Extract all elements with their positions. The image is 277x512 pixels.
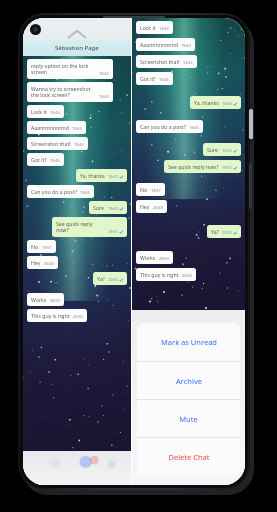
staticText: Screenshot that! bbox=[31, 140, 71, 147]
button[interactable]: Aaannnnnnnnd bbox=[27, 121, 86, 134]
staticText: 19:45 bbox=[108, 206, 118, 211]
staticText: Sure bbox=[207, 146, 219, 153]
staticText: 19:43 bbox=[181, 43, 191, 48]
staticText: Hey bbox=[31, 259, 41, 266]
staticText: This guy is right bbox=[31, 312, 70, 319]
staticText: Got it? bbox=[31, 156, 47, 163]
button[interactable]: Ya, thanks bbox=[76, 169, 127, 182]
staticText: 19:45 bbox=[50, 158, 60, 163]
staticText: 19:57 bbox=[108, 229, 118, 234]
staticText: Mark as Unread bbox=[161, 337, 217, 347]
button[interactable]: Got it? bbox=[136, 72, 173, 85]
button[interactable]: See quick reply now? bbox=[52, 217, 127, 237]
staticText: Lock it bbox=[140, 24, 156, 31]
button[interactable]: Sure bbox=[89, 201, 127, 214]
staticText: 19:43 bbox=[99, 71, 109, 76]
staticText: 19:57 bbox=[42, 245, 52, 250]
button[interactable]: Archive bbox=[137, 362, 240, 399]
staticText: 20:50 bbox=[159, 256, 169, 261]
staticText: Got it? bbox=[140, 75, 156, 82]
staticText: 19:43 bbox=[74, 142, 84, 147]
staticText: 19:57 bbox=[222, 165, 232, 170]
button[interactable]: Screenshot that! bbox=[27, 137, 88, 150]
staticText: No bbox=[140, 186, 148, 193]
staticText: 20:50 bbox=[73, 314, 83, 319]
button[interactable]: No bbox=[27, 240, 56, 253]
staticText: Ya? bbox=[211, 228, 219, 235]
staticText: 20:50 bbox=[108, 277, 118, 282]
button[interactable]: Hey bbox=[136, 200, 167, 213]
staticText: Ya? bbox=[97, 275, 105, 282]
staticText: 19:57 bbox=[151, 188, 161, 193]
staticText: 20:50 bbox=[50, 298, 60, 303]
button[interactable]: Wanna try to screenshot the lock screen? bbox=[27, 82, 113, 102]
staticText: 20:49 bbox=[44, 261, 54, 266]
staticText: Mute bbox=[179, 414, 198, 424]
button[interactable]: Mark as Unread bbox=[137, 323, 240, 361]
staticText: 19:43 bbox=[72, 126, 82, 131]
staticText: Lock it bbox=[31, 108, 47, 115]
staticText: Delete Chat bbox=[168, 452, 210, 462]
staticText: 19:45 bbox=[108, 174, 118, 179]
staticText: Works bbox=[31, 296, 47, 303]
button[interactable]: Ya? bbox=[93, 272, 127, 285]
staticText: 20:49 bbox=[153, 205, 163, 210]
button[interactable]: Mute bbox=[137, 400, 240, 437]
staticText: reply option on the lock screen bbox=[31, 62, 96, 76]
button[interactable]: Delete Chat bbox=[137, 438, 240, 475]
staticText: 19:45 bbox=[222, 101, 232, 106]
staticText: See quick reply now? bbox=[56, 220, 105, 234]
button[interactable]: Ya, thanks bbox=[190, 96, 241, 109]
button[interactable]: Sébastien Page bbox=[23, 40, 131, 56]
staticText: Works bbox=[140, 254, 156, 261]
staticText: Can you do a post? bbox=[31, 188, 77, 195]
staticText: Sébastien Page bbox=[55, 44, 99, 52]
staticText: Archive bbox=[176, 376, 202, 386]
staticText: 19:43 bbox=[159, 26, 169, 31]
staticText: Sure bbox=[93, 204, 105, 211]
staticText: 19:45 bbox=[159, 77, 169, 82]
button[interactable]: This guy is right bbox=[136, 268, 196, 281]
staticText: 19:45 bbox=[222, 148, 232, 153]
staticText: Ya, thanks bbox=[80, 172, 105, 179]
staticText: See quick reply now? bbox=[168, 163, 219, 170]
button[interactable]: Can you do a post? bbox=[136, 120, 203, 133]
staticText: 19:43 bbox=[183, 60, 193, 65]
button[interactable]: Can you do a post? bbox=[27, 185, 94, 198]
staticText: Aaannnnnnnnd bbox=[31, 124, 69, 131]
staticText: 19:45 bbox=[80, 190, 90, 195]
staticText: Hey bbox=[140, 203, 150, 210]
staticText: Can you do a post? bbox=[140, 123, 186, 130]
button[interactable]: Lock it bbox=[136, 21, 173, 34]
button[interactable]: This guy is right bbox=[27, 309, 87, 322]
staticText: 20:50 bbox=[182, 273, 192, 278]
button[interactable]: Works bbox=[136, 251, 173, 264]
button[interactable]: reply option on the lock screen bbox=[27, 59, 113, 79]
staticText: 20:50 bbox=[222, 230, 232, 235]
staticText: Screenshot that! bbox=[140, 58, 180, 65]
button[interactable]: Got it? bbox=[27, 153, 64, 166]
button[interactable]: Hey bbox=[27, 256, 58, 269]
button[interactable]: See quick reply now? bbox=[164, 160, 241, 173]
other: Power button bbox=[249, 109, 253, 139]
other: Front camera bbox=[30, 24, 41, 35]
staticText: Aaannnnnnnnd bbox=[140, 41, 178, 48]
button[interactable]: Ya? bbox=[207, 225, 241, 238]
staticText: No bbox=[31, 243, 39, 250]
staticText: Ya, thanks bbox=[194, 99, 219, 106]
button[interactable]: Aaannnnnnnnd bbox=[136, 38, 195, 51]
staticText: 19:45 bbox=[189, 125, 199, 130]
staticText: Wanna try to screenshot the lock screen? bbox=[31, 85, 96, 99]
button[interactable]: Screenshot that! bbox=[136, 55, 197, 68]
button[interactable]: Lock it bbox=[27, 105, 64, 118]
button[interactable]: Works bbox=[27, 293, 64, 306]
staticText: This guy is right bbox=[140, 271, 179, 278]
button[interactable]: No bbox=[136, 183, 165, 196]
button[interactable]: Sure bbox=[203, 143, 241, 156]
staticText: 19:43 bbox=[99, 94, 109, 99]
staticText: 19:43 bbox=[50, 110, 60, 115]
